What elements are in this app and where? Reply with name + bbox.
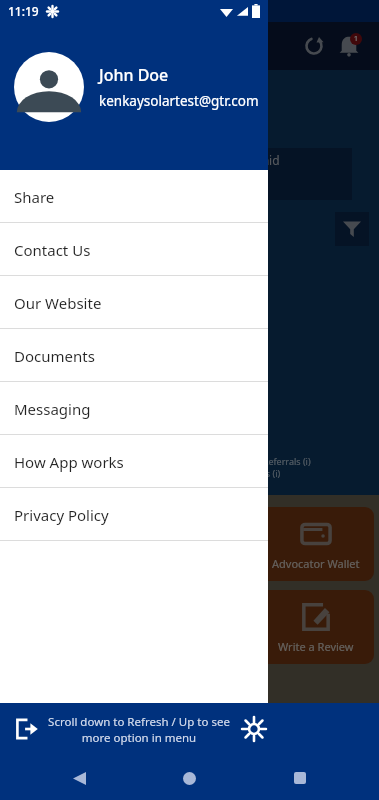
staticText: Rewards Paid (204, 152, 280, 168)
button[interactable]: Settings (236, 711, 272, 747)
staticText: John Doe (99, 64, 169, 86)
staticText: Write a Review (278, 639, 354, 654)
button[interactable]: Share (0, 170, 268, 223)
staticText: Share (14, 187, 55, 207)
button[interactable]: Contact Us (0, 223, 268, 276)
button[interactable]: Documents (0, 329, 268, 382)
staticText: kenkaysolartest@gtr.com (99, 92, 259, 110)
staticText: Documents (14, 346, 95, 366)
button[interactable]: Filter (335, 212, 369, 246)
staticText: Privacy Policy (14, 505, 109, 525)
other: Recents (287, 765, 313, 791)
button[interactable]: Messaging (0, 382, 268, 435)
button[interactable]: Refresh (299, 31, 329, 61)
staticText: Scroll down to Refresh / Up to see more … (46, 714, 232, 745)
button[interactable]: Notifications (333, 30, 365, 62)
button[interactable]: Rewards Paid (196, 148, 352, 200)
staticText: Contact Us (14, 240, 91, 260)
button[interactable]: Privacy Policy (0, 488, 268, 541)
staticText: Messaging (14, 399, 91, 419)
button[interactable]: Write a Review (258, 590, 374, 664)
button[interactable]: Advocator Wallet (258, 507, 374, 581)
button[interactable]: Our Website (0, 276, 268, 329)
other: Home (176, 765, 202, 791)
staticText: Advocator Wallet (272, 556, 360, 571)
staticText: Our Website (14, 293, 102, 313)
staticText: 11:19 (8, 3, 39, 19)
staticText: How App works (14, 452, 124, 472)
staticText: Total Referrals (i) (240, 455, 311, 467)
button[interactable]: Logout (0, 703, 379, 755)
other: Back (66, 765, 92, 791)
staticText: 1 (354, 34, 359, 44)
button[interactable]: John Doe (0, 52, 268, 122)
other: Logout (8, 710, 46, 748)
button[interactable]: How App works (0, 435, 268, 488)
staticText: Installs (i) (240, 467, 281, 479)
